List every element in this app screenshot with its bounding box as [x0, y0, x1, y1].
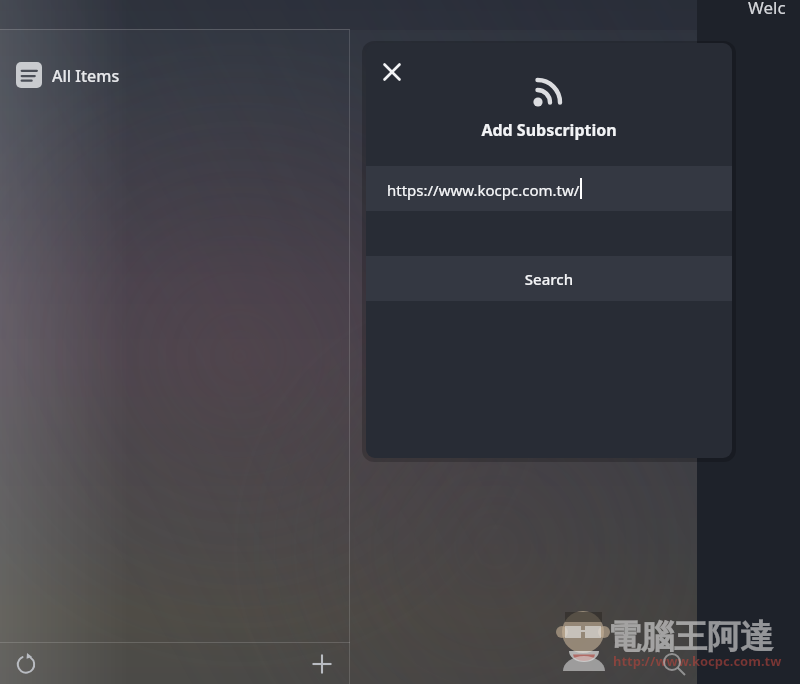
button[interactable]: Search [366, 256, 732, 301]
button[interactable]: Add subscription [304, 646, 340, 682]
staticText: https://www.kocpc.com.tw/ [387, 180, 580, 200]
button[interactable]: https://www.kocpc.com.tw/ [366, 166, 732, 211]
button[interactable]: Close [372, 52, 412, 92]
staticText: All Items [52, 65, 120, 87]
staticText: http://www.kocpc.com.tw [613, 652, 782, 670]
staticText: Add Subscription [366, 119, 732, 145]
staticText: Welc [748, 0, 786, 19]
staticText: 電腦王阿達 [608, 616, 773, 658]
button[interactable]: Refresh [8, 646, 44, 682]
button[interactable]: All Items [0, 56, 350, 94]
staticText: Search [366, 269, 732, 291]
